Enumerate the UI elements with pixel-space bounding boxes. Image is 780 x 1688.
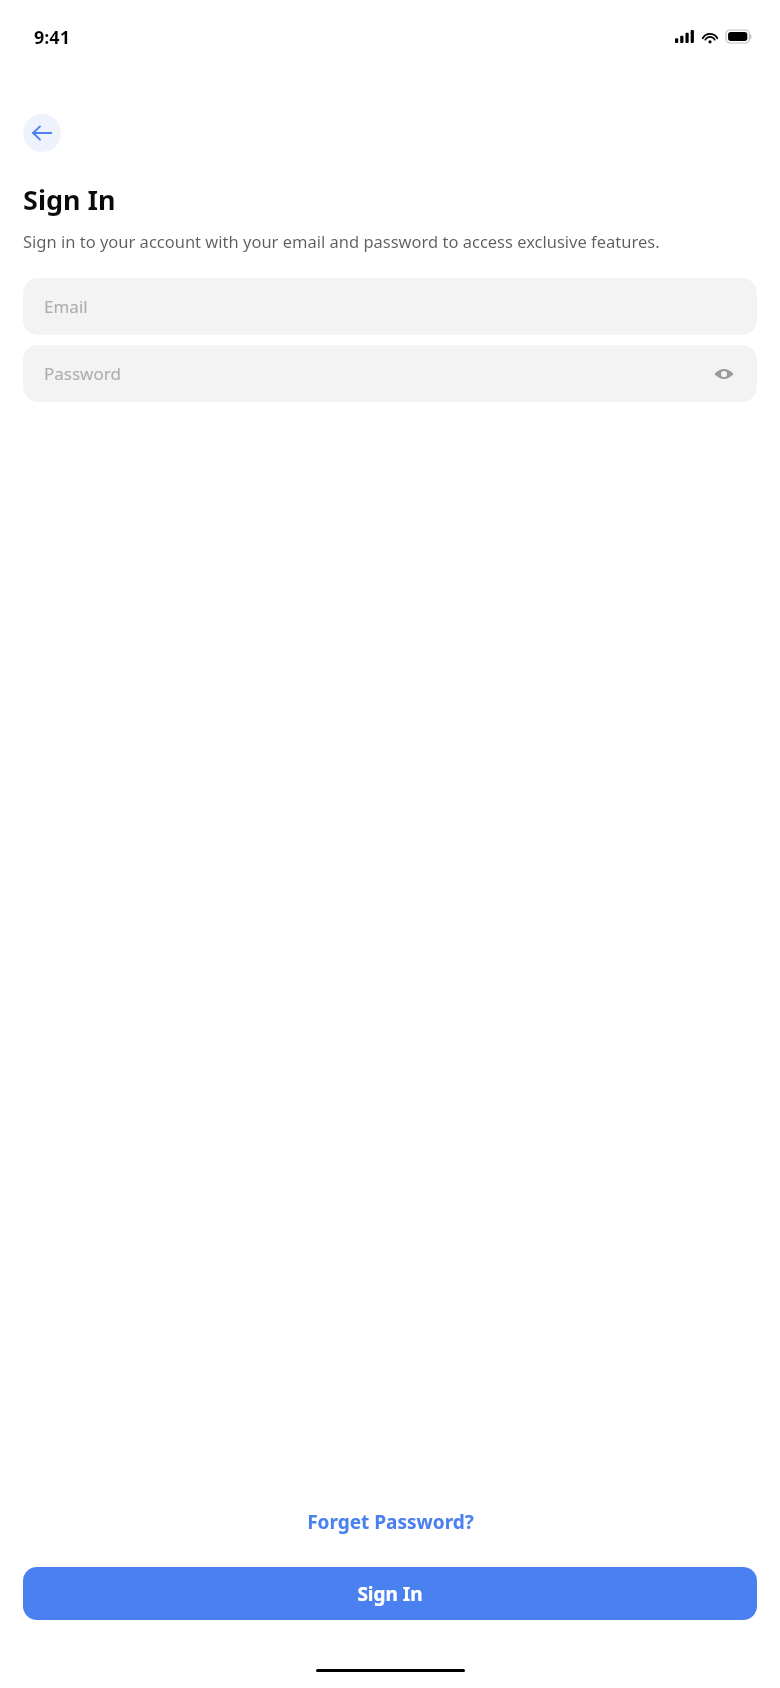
button[interactable]: Sign In [23,1567,757,1620]
staticText: 9:41 [34,25,70,50]
button[interactable]: Show password [712,362,736,386]
button[interactable]: Forget Password? [23,1509,757,1535]
button[interactable]: Password [23,345,757,402]
staticText: Email [44,295,736,318]
staticText: Sign in to your account with your email … [23,230,660,252]
button[interactable]: Email [23,278,757,335]
staticText: Forget Password? [307,1509,474,1535]
staticText: Password [44,362,712,385]
staticText: Sign In [357,1581,423,1607]
staticText: Sign In [23,181,116,218]
button[interactable]: Back [23,114,61,152]
